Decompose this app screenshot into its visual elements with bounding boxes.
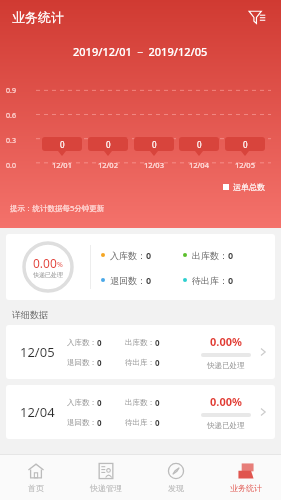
staticText: 快递管理 <box>90 483 122 493</box>
staticText: 12/01 <box>52 160 72 170</box>
staticText: 0 <box>97 357 102 368</box>
staticText: 退回数： <box>110 275 146 286</box>
staticText: 0 <box>155 357 160 368</box>
staticText: 0 <box>146 249 152 261</box>
staticText: 运单总数 <box>233 182 265 192</box>
staticText: 出库数： <box>192 250 228 261</box>
staticText: 0 <box>155 337 160 348</box>
staticText: 退回数： <box>67 418 97 427</box>
staticText: 入库数： <box>67 398 97 407</box>
staticText: 入库数： <box>67 338 97 347</box>
staticText: 详细数据 <box>12 309 48 320</box>
staticText: 出库数： <box>125 338 155 347</box>
staticText: 0.00% <box>210 334 242 349</box>
staticText: 12/05 <box>20 343 55 361</box>
staticText: 业务统计 <box>12 9 64 25</box>
staticText: 12/05 <box>235 160 255 170</box>
staticText: 0 <box>228 274 234 286</box>
button[interactable]: 12/05 <box>6 325 275 379</box>
staticText: 0 <box>97 397 102 408</box>
button[interactable]: Filter <box>245 5 269 29</box>
staticText: 0 <box>155 397 160 408</box>
button[interactable]: 出库数： <box>183 249 265 261</box>
staticText: 0.00 <box>33 255 57 271</box>
staticText: 0.3 <box>6 136 16 146</box>
staticText: 0 <box>228 249 234 261</box>
staticText: 待出库： <box>125 358 155 367</box>
button[interactable]: 待出库： <box>183 274 265 286</box>
staticText: 退回数： <box>67 358 97 367</box>
button[interactable]: 快递管理 <box>71 455 141 500</box>
staticText: 0 <box>106 139 111 150</box>
staticText: 0.0 <box>6 161 16 171</box>
staticText: 12/02 <box>98 160 118 170</box>
button[interactable]: 12/04 <box>6 385 275 439</box>
button[interactable]: 首页 <box>0 455 71 500</box>
staticText: 0 <box>197 139 202 150</box>
staticText: 快递已处理 <box>207 361 245 370</box>
staticText: 0 <box>155 417 160 428</box>
button[interactable]: 发现 <box>141 455 211 500</box>
staticText: 入库数： <box>110 250 146 261</box>
staticText: 待出库： <box>125 418 155 427</box>
staticText: 0 <box>60 139 65 150</box>
staticText: 0 <box>243 139 248 150</box>
staticText: 发现 <box>168 483 184 493</box>
staticText: % <box>57 260 63 270</box>
staticText: 首页 <box>28 483 44 493</box>
staticText: 12/04 <box>189 160 209 170</box>
staticText: 提示：统计数据每5分钟更新 <box>10 203 105 213</box>
button[interactable]: 入库数： <box>101 249 183 261</box>
staticText: 12/04 <box>20 403 55 421</box>
staticText: 0.6 <box>6 111 16 121</box>
button[interactable]: 2019/12/01 － 2019/12/05 <box>73 44 208 59</box>
staticText: 12/03 <box>144 160 164 170</box>
button[interactable]: 业务统计 <box>211 455 281 500</box>
staticText: 待出库： <box>192 275 228 286</box>
staticText: 0 <box>146 274 152 286</box>
staticText: 快递已处理 <box>33 271 63 279</box>
button[interactable]: 退回数： <box>101 274 183 286</box>
staticText: 0 <box>152 139 157 150</box>
staticText: 0 <box>97 337 102 348</box>
staticText: 业务统计 <box>230 483 262 493</box>
staticText: 0.00% <box>210 394 242 409</box>
staticText: 快递已处理 <box>207 421 245 430</box>
staticText: 出库数： <box>125 398 155 407</box>
staticText: 0.9 <box>6 86 16 96</box>
staticText: 0 <box>97 417 102 428</box>
